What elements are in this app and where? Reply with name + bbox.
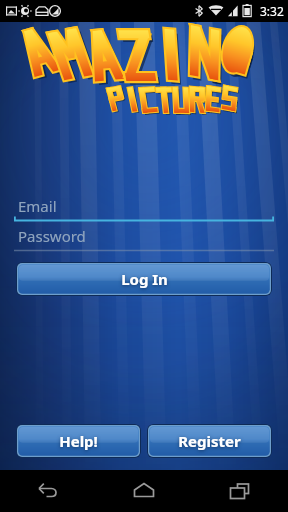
staticText: Log In — [121, 269, 168, 289]
staticText: Password — [18, 226, 86, 246]
staticText: Help! — [59, 431, 98, 451]
button[interactable]: Back — [0, 470, 96, 512]
button[interactable]: Help! — [16, 424, 141, 458]
button[interactable]: Home — [96, 470, 192, 512]
button[interactable]: Password — [14, 222, 274, 252]
staticText: Email — [18, 196, 57, 216]
staticText: Register — [178, 431, 241, 451]
button[interactable]: Email — [14, 192, 274, 222]
button[interactable]: Recent apps — [192, 470, 288, 512]
staticText: 3:32 — [260, 3, 284, 19]
button[interactable]: Log In — [16, 262, 272, 296]
button[interactable]: Register — [147, 424, 272, 458]
